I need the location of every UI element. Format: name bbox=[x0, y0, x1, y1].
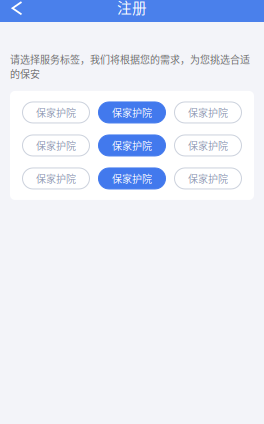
button[interactable]: 保家护院 bbox=[22, 135, 89, 156]
staticText: 保家护院 bbox=[36, 105, 76, 120]
button[interactable]: 保家护院 bbox=[22, 102, 89, 123]
staticText: 保家护院 bbox=[188, 105, 228, 120]
button[interactable]: Back bbox=[0, 0, 32, 22]
staticText: 请选择服务标签，我们将根据您的需求，为您挑选合适的保安 bbox=[10, 52, 250, 81]
staticText: 保家护院 bbox=[188, 138, 228, 153]
staticText: 保家护院 bbox=[36, 138, 76, 153]
button[interactable]: 保家护院 bbox=[98, 168, 165, 189]
button[interactable]: 保家护院 bbox=[22, 168, 89, 189]
staticText: 保家护院 bbox=[112, 171, 152, 186]
staticText: 保家护院 bbox=[188, 171, 228, 186]
button[interactable]: 保家护院 bbox=[98, 102, 165, 123]
button[interactable]: 保家护院 bbox=[174, 168, 241, 189]
button[interactable]: 保家护院 bbox=[174, 135, 241, 156]
staticText: 保家护院 bbox=[112, 138, 152, 153]
staticText: 保家护院 bbox=[112, 105, 152, 120]
staticText: 保家护院 bbox=[36, 171, 76, 186]
button[interactable]: 保家护院 bbox=[98, 135, 165, 156]
staticText: 注册 bbox=[117, 0, 147, 18]
button[interactable]: 保家护院 bbox=[174, 102, 241, 123]
